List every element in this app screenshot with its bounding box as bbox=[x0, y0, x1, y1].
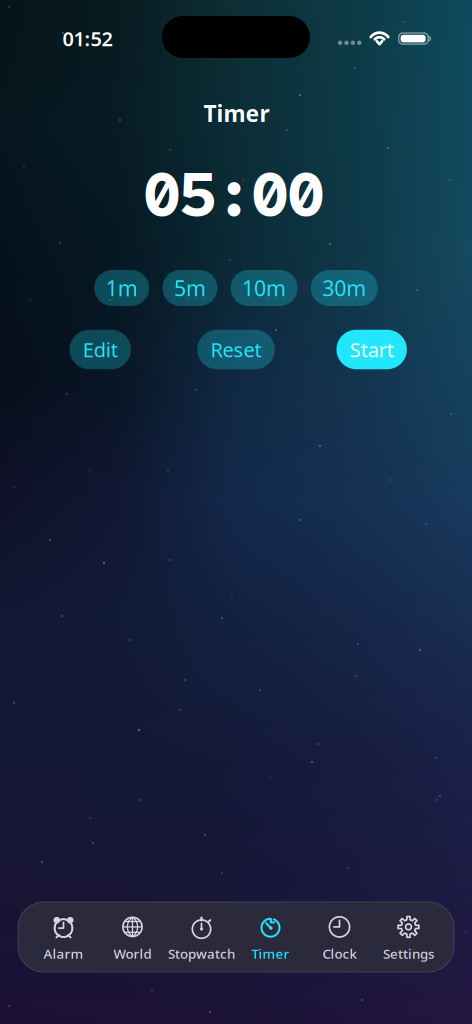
button[interactable]: Start bbox=[336, 330, 407, 369]
button[interactable]: 10m bbox=[231, 270, 298, 306]
staticText: 30m bbox=[322, 274, 366, 302]
staticText: Clock bbox=[322, 945, 356, 962]
staticText: Settings bbox=[383, 945, 434, 962]
staticText: Reset bbox=[210, 336, 261, 363]
staticText: 5m bbox=[174, 274, 206, 302]
button[interactable]: Edit bbox=[70, 330, 131, 369]
button[interactable]: Clock bbox=[305, 901, 374, 972]
staticText: 01:52 bbox=[62, 25, 112, 52]
staticText: Edit bbox=[83, 336, 118, 363]
button[interactable]: 30m bbox=[311, 270, 378, 306]
staticText: Timer bbox=[204, 98, 270, 128]
button[interactable]: Timer bbox=[236, 901, 305, 972]
staticText: Alarm bbox=[43, 945, 83, 962]
button[interactable]: Stopwatch bbox=[167, 901, 236, 972]
staticText: Start bbox=[350, 336, 394, 363]
staticText: Stopwatch bbox=[168, 945, 235, 962]
staticText: 10m bbox=[242, 274, 286, 302]
button[interactable]: Settings bbox=[374, 901, 443, 972]
button[interactable]: Reset bbox=[197, 330, 275, 369]
staticText: World bbox=[113, 945, 151, 962]
button[interactable]: World bbox=[98, 901, 167, 972]
button[interactable]: 1m bbox=[94, 270, 149, 306]
button[interactable]: 5m bbox=[162, 270, 217, 306]
staticText: 1m bbox=[106, 274, 138, 302]
button[interactable]: Alarm bbox=[29, 901, 98, 972]
staticText: Timer bbox=[251, 945, 289, 962]
staticText: 05:00 bbox=[144, 155, 324, 234]
